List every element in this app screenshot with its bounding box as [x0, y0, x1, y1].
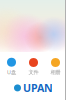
button[interactable]: U盘	[0, 58, 22, 76]
button[interactable]: 相册	[44, 58, 66, 76]
staticText: UPAN	[23, 81, 53, 95]
staticText: U盘	[7, 69, 16, 76]
staticText: 文件	[28, 69, 38, 76]
staticText: 相册	[50, 69, 60, 76]
button[interactable]: 文件	[22, 58, 44, 76]
